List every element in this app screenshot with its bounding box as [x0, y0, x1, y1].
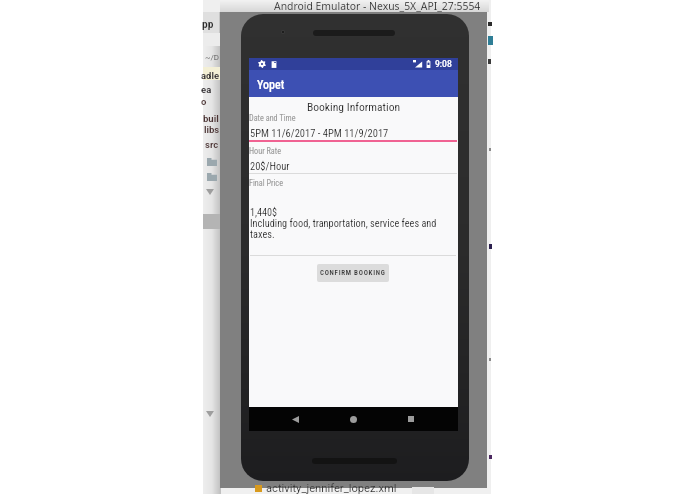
- staticText: Including food, tranportation, service f…: [250, 217, 450, 241]
- staticText: o: [201, 96, 207, 107]
- staticText: pp: [202, 19, 214, 31]
- staticText: 5PM 11/6/2017 - 4PM 11/9/2017: [250, 127, 389, 139]
- staticText: Booking Information: [249, 100, 458, 114]
- staticText: Yopet: [257, 78, 285, 92]
- button[interactable]: CONFIRM BOOKING: [317, 264, 389, 282]
- staticText: src: [205, 139, 219, 150]
- staticText: libs: [204, 124, 220, 135]
- staticText: CONFIRM BOOKING: [320, 269, 386, 277]
- staticText: ~/D: [205, 53, 219, 62]
- staticText: Android Emulator - Nexus_5X_API_27:5554: [274, 0, 481, 13]
- staticText: Final Price: [249, 178, 283, 188]
- staticText: Hour Rate: [249, 146, 282, 156]
- staticText: ea: [201, 84, 212, 95]
- staticText: 9:08: [435, 59, 452, 69]
- staticText: activity_jennifer_lopez.xml: [266, 482, 397, 494]
- staticText: adle: [201, 70, 220, 81]
- staticText: buil: [203, 113, 219, 124]
- staticText: 20$/Hour: [250, 160, 290, 172]
- staticText: Date and Time: [249, 113, 296, 123]
- staticText: 1,440$: [250, 207, 278, 219]
- button[interactable]: Home: [342, 408, 364, 430]
- button[interactable]: Recents: [400, 408, 422, 430]
- button[interactable]: Back: [284, 408, 306, 430]
